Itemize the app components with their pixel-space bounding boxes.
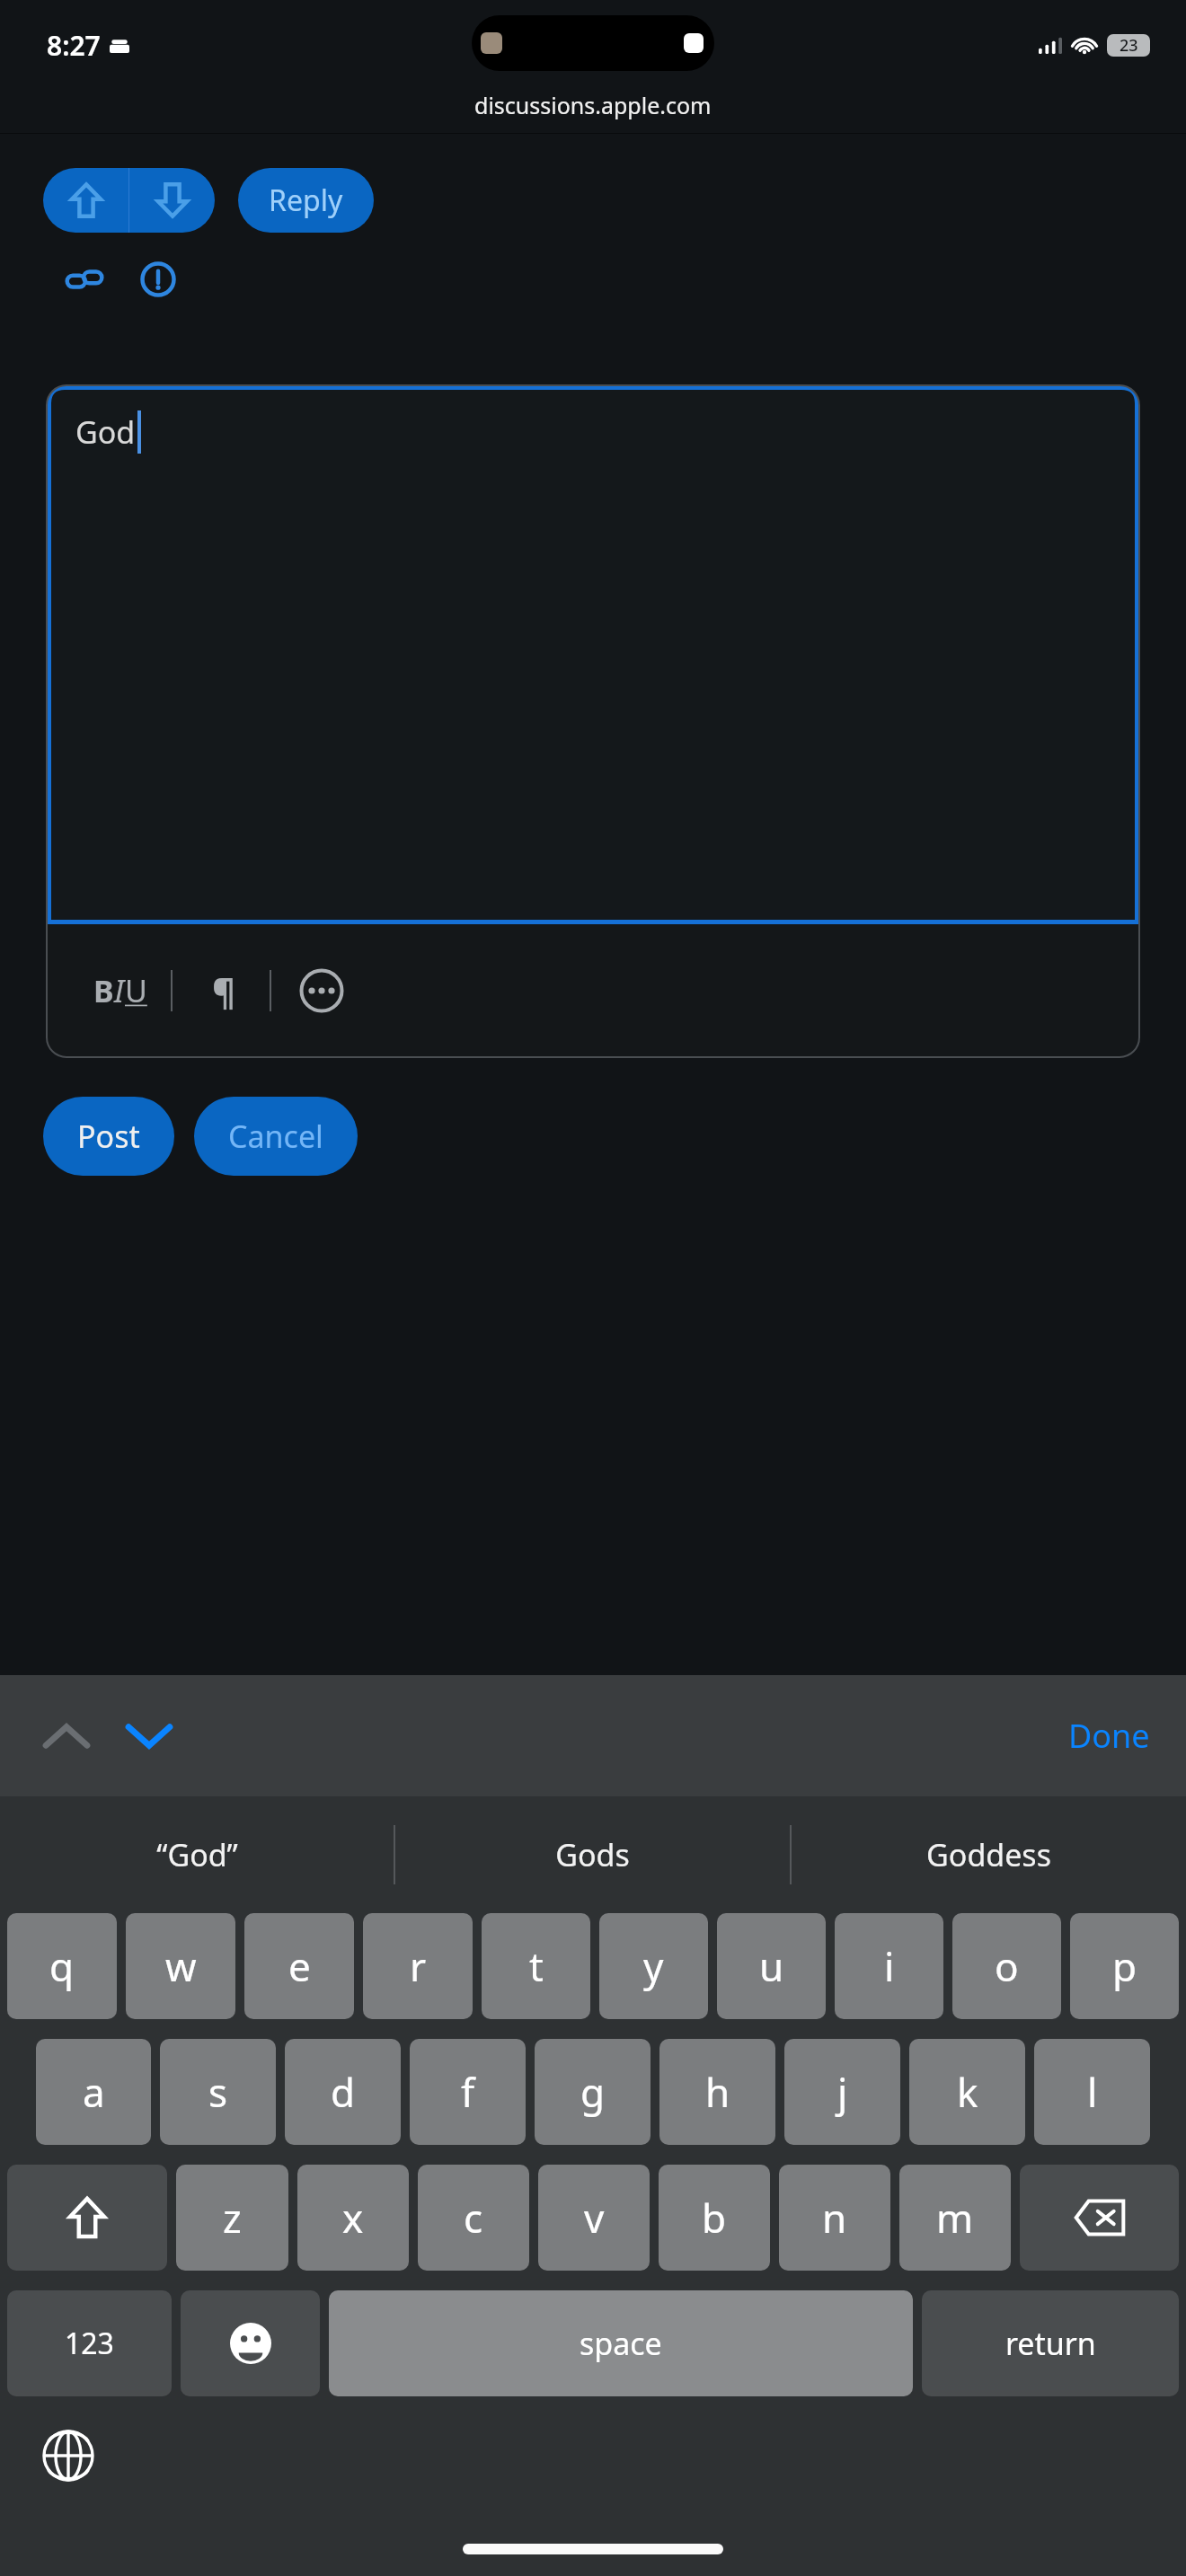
staticText: Post bbox=[77, 1116, 140, 1157]
button[interactable]: g bbox=[535, 2039, 651, 2145]
button[interactable]: Downvote bbox=[129, 168, 215, 233]
staticText: h bbox=[705, 2065, 730, 2119]
staticText: discussions.apple.com bbox=[474, 90, 712, 120]
button[interactable]: return bbox=[922, 2290, 1179, 2396]
staticText: p bbox=[1112, 1939, 1137, 1993]
staticText: c bbox=[464, 2191, 483, 2245]
button[interactable]: e bbox=[244, 1913, 354, 2019]
button[interactable]: Switch keyboard bbox=[34, 2422, 102, 2490]
staticText: t bbox=[529, 1939, 544, 1993]
button[interactable]: B bbox=[93, 956, 147, 1026]
button[interactable]: m bbox=[899, 2165, 1011, 2271]
staticText: Gods bbox=[555, 1834, 630, 1875]
button[interactable]: u bbox=[717, 1913, 826, 2019]
staticText: d bbox=[331, 2065, 356, 2119]
staticText: I bbox=[114, 970, 125, 1011]
staticText: k bbox=[957, 2065, 978, 2119]
staticText: Reply bbox=[269, 181, 343, 220]
staticText: z bbox=[223, 2191, 242, 2245]
staticText: m bbox=[936, 2191, 974, 2245]
staticText: o bbox=[995, 1939, 1019, 1993]
staticText: q bbox=[49, 1939, 75, 1993]
button[interactable]: c bbox=[418, 2165, 529, 2271]
staticText: ¶ bbox=[212, 966, 235, 1015]
button[interactable]: Next field bbox=[115, 1702, 183, 1770]
staticText: u bbox=[759, 1939, 784, 1993]
staticText: s bbox=[208, 2065, 228, 2119]
staticText: U bbox=[125, 970, 147, 1011]
button[interactable]: k bbox=[909, 2039, 1025, 2145]
staticText: B bbox=[93, 970, 114, 1011]
button[interactable]: i bbox=[835, 1913, 943, 2019]
staticText: 8:27 bbox=[47, 27, 101, 64]
button[interactable]: Paragraph bbox=[199, 966, 248, 1015]
staticText: God bbox=[75, 411, 136, 453]
button[interactable]: f bbox=[410, 2039, 526, 2145]
staticText: x bbox=[342, 2191, 364, 2245]
button[interactable]: b bbox=[659, 2165, 770, 2271]
button[interactable]: space bbox=[329, 2290, 913, 2396]
staticText: w bbox=[165, 1939, 197, 1993]
button[interactable]: r bbox=[363, 1913, 473, 2019]
staticText: Goddess bbox=[926, 1834, 1051, 1875]
button[interactable]: q bbox=[7, 1913, 117, 2019]
staticText: return bbox=[1005, 2323, 1096, 2364]
button[interactable]: Report bbox=[131, 252, 185, 306]
staticText: “God” bbox=[156, 1834, 238, 1875]
button[interactable]: Shift bbox=[7, 2165, 167, 2271]
button[interactable]: “God” bbox=[0, 1796, 394, 1913]
staticText: y bbox=[643, 1939, 664, 1993]
button[interactable]: n bbox=[779, 2165, 890, 2271]
staticText: v bbox=[584, 2191, 605, 2245]
button[interactable]: x bbox=[297, 2165, 409, 2271]
staticText: n bbox=[822, 2191, 847, 2245]
staticText: Cancel bbox=[228, 1116, 323, 1157]
staticText: a bbox=[83, 2065, 105, 2119]
button[interactable]: Reply bbox=[238, 168, 374, 233]
button[interactable]: p bbox=[1070, 1913, 1179, 2019]
staticText: g bbox=[580, 2065, 606, 2119]
button[interactable]: t bbox=[482, 1913, 590, 2019]
button[interactable]: 123 bbox=[7, 2290, 172, 2396]
button[interactable]: z bbox=[176, 2165, 288, 2271]
staticText: 123 bbox=[65, 2324, 114, 2363]
button[interactable]: Cancel bbox=[194, 1097, 358, 1176]
button[interactable]: Copy link bbox=[58, 252, 111, 306]
button[interactable]: h bbox=[659, 2039, 775, 2145]
button[interactable]: Previous field bbox=[32, 1702, 101, 1770]
button[interactable]: Emoji bbox=[181, 2290, 320, 2396]
staticText: space bbox=[580, 2323, 662, 2364]
button[interactable]: d bbox=[285, 2039, 401, 2145]
staticText: e bbox=[288, 1939, 311, 1993]
button[interactable]: w bbox=[126, 1913, 235, 2019]
button[interactable]: s bbox=[160, 2039, 276, 2145]
button[interactable]: God bbox=[47, 385, 1139, 924]
staticText: Done bbox=[1068, 1714, 1150, 1758]
staticText: i bbox=[884, 1939, 895, 1993]
staticText: r bbox=[410, 1939, 427, 1993]
staticText: j bbox=[837, 2065, 848, 2119]
staticText: f bbox=[461, 2065, 475, 2119]
button[interactable]: Backspace bbox=[1020, 2165, 1179, 2271]
button[interactable]: v bbox=[538, 2165, 650, 2271]
button[interactable]: l bbox=[1034, 2039, 1150, 2145]
button[interactable]: Upvote bbox=[43, 168, 128, 233]
button[interactable]: y bbox=[599, 1913, 708, 2019]
button[interactable]: Goddess bbox=[792, 1796, 1186, 1913]
button[interactable]: Done bbox=[1032, 1698, 1186, 1774]
button[interactable]: a bbox=[36, 2039, 151, 2145]
button[interactable]: j bbox=[784, 2039, 900, 2145]
staticText: l bbox=[1087, 2065, 1098, 2119]
staticText: 23 bbox=[1120, 34, 1138, 57]
button[interactable]: Post bbox=[43, 1097, 174, 1176]
button[interactable]: Gods bbox=[395, 1796, 790, 1913]
staticText: b bbox=[702, 2191, 727, 2245]
button[interactable]: More bbox=[296, 966, 347, 1016]
button[interactable]: o bbox=[952, 1913, 1061, 2019]
